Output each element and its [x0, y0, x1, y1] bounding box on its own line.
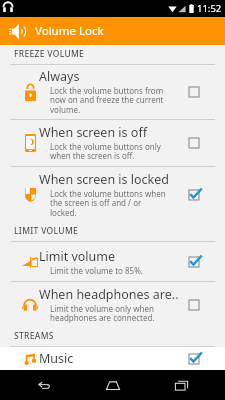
staticText: 11:52: [197, 2, 222, 15]
button[interactable]: When screen is off: [0, 120, 225, 167]
staticText: Lock the volume buttons from now on and …: [50, 85, 168, 116]
button[interactable]: Always: [0, 65, 225, 120]
staticText: LIMIT VOLUME: [14, 225, 79, 237]
button[interactable]: Home: [88, 370, 138, 400]
staticText: Limit volume: [39, 248, 116, 265]
button[interactable]: When screen is locked: [0, 167, 225, 222]
button[interactable]: When headphones are..: [0, 282, 225, 327]
staticText: Always: [39, 68, 80, 85]
staticText: Lock the volume buttons only when the sc…: [50, 141, 168, 162]
staticText: Limit the volume to 85%.: [50, 265, 143, 276]
staticText: FREEZE VOLUME: [14, 48, 85, 60]
staticText: Volume Lock: [35, 23, 104, 39]
button[interactable]: Back: [19, 370, 69, 400]
staticText: When headphones are..: [39, 286, 179, 303]
staticText: When screen is off: [39, 124, 147, 141]
staticText: When screen is locked: [39, 171, 170, 188]
button[interactable]: Limit volume: [0, 242, 225, 282]
staticText: Lock the volume buttons when the screen …: [50, 188, 168, 219]
staticText: Music: [39, 350, 74, 367]
button[interactable]: Music: [0, 347, 225, 370]
staticText: Limit the volume only when headphones ar…: [50, 303, 168, 324]
button[interactable]: Recent apps: [156, 370, 206, 400]
staticText: STREAMS: [14, 330, 54, 342]
